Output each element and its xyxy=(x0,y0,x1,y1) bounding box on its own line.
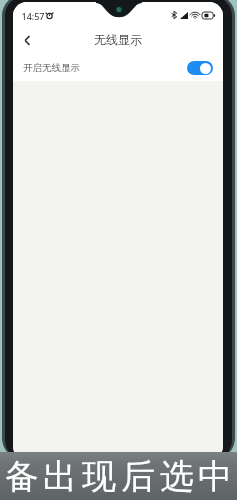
staticText: 开启无线显示 xyxy=(23,62,80,74)
staticText: 出 xyxy=(43,455,77,498)
button[interactable]: 开启无线显示 xyxy=(13,55,223,81)
staticText: 现 xyxy=(82,455,116,498)
staticText: 选 xyxy=(160,455,194,498)
staticText: 后 xyxy=(121,455,155,498)
staticText: 14:57 xyxy=(21,10,45,22)
staticText: 中 xyxy=(198,455,232,498)
button[interactable]: Back xyxy=(13,26,41,54)
staticText: 备 xyxy=(5,455,39,498)
staticText: 无线显示 xyxy=(94,32,142,47)
